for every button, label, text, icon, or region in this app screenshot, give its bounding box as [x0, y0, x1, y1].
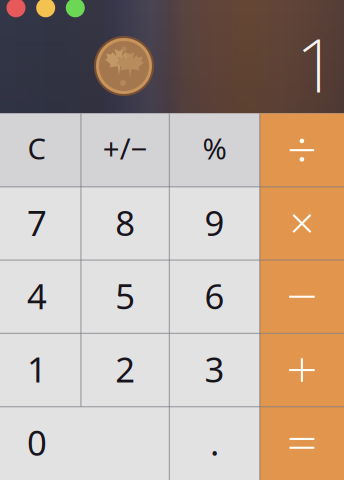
button[interactable]: 5: [81, 260, 169, 333]
staticText: 0: [27, 419, 47, 465]
button[interactable]: +/−: [81, 113, 169, 187]
button[interactable]: 2: [81, 333, 169, 407]
button[interactable]: %: [169, 113, 260, 187]
button[interactable]: 7: [0, 187, 81, 260]
button[interactable]: Equals: [260, 407, 344, 480]
staticText: 6: [205, 273, 225, 319]
staticText: C: [27, 129, 46, 168]
staticText: .: [210, 419, 219, 465]
staticText: 1: [295, 14, 338, 113]
button[interactable]: 9: [169, 187, 260, 260]
button[interactable]: Subtract: [260, 260, 344, 333]
staticText: 7: [27, 199, 47, 245]
staticText: 9: [205, 199, 225, 245]
button[interactable]: Add: [260, 333, 344, 407]
staticText: %: [203, 129, 227, 168]
button[interactable]: 0: [0, 407, 169, 480]
button[interactable]: 3: [169, 333, 260, 407]
button[interactable]: C: [0, 113, 81, 187]
staticText: 3: [205, 346, 225, 392]
staticText: 1: [27, 346, 47, 392]
button[interactable]: Divide: [260, 113, 344, 187]
button[interactable]: .: [169, 407, 260, 480]
button[interactable]: 1: [0, 333, 81, 407]
staticText: 8: [115, 199, 135, 245]
button[interactable]: 4: [0, 260, 81, 333]
staticText: 5: [115, 273, 135, 319]
staticText: 2: [115, 346, 135, 392]
staticText: 4: [27, 273, 47, 319]
button[interactable]: Multiply: [260, 187, 344, 260]
button[interactable]: 8: [81, 187, 169, 260]
button[interactable]: 6: [169, 260, 260, 333]
staticText: +/−: [103, 129, 148, 168]
